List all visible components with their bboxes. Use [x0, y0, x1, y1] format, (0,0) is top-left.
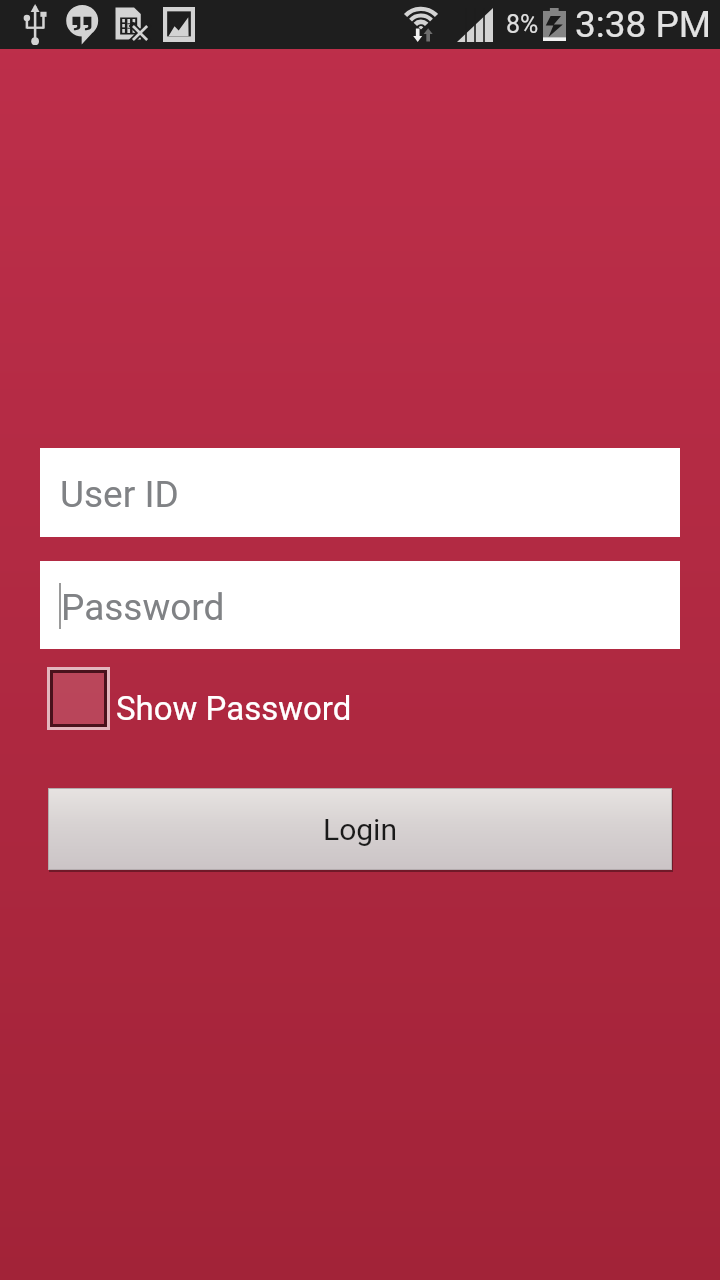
staticText: 3:38 PM: [575, 3, 712, 46]
button[interactable]: Show password checkbox: [47, 667, 352, 730]
other: Hangouts message: [66, 5, 99, 45]
other: USB connected: [21, 4, 52, 46]
button[interactable]: User ID: [40, 448, 680, 537]
button[interactable]: Login: [48, 788, 672, 870]
other: No SIM card: [115, 7, 148, 43]
staticText: User ID: [60, 473, 179, 516]
staticText: Password: [61, 586, 225, 629]
button[interactable]: Password: [40, 561, 680, 649]
staticText: 8%: [506, 10, 539, 39]
other: Screenshot captured: [163, 7, 195, 42]
other: Show password checkbox: [47, 667, 110, 730]
staticText: Login: [323, 812, 397, 847]
staticText: Show Password: [116, 689, 352, 728]
